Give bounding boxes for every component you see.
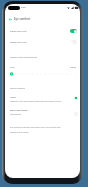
staticText: Single Line Title [10, 41, 27, 44]
button[interactable] [5, 37, 80, 47]
button[interactable] [5, 106, 80, 119]
staticText: Description [10, 113, 22, 116]
staticText: Eye comfort [14, 17, 31, 21]
staticText: Cool [10, 66, 15, 69]
staticText: Color [10, 96, 16, 99]
staticText: prevents eye strain. [10, 131, 30, 134]
staticText: Black and White [10, 109, 28, 112]
staticText: DISPLAY EFFECTS [10, 87, 25, 90]
button[interactable] [5, 93, 80, 106]
staticText: Warm [70, 66, 77, 69]
staticText: SCREEN COLOR TEMPERATURE [10, 56, 37, 59]
staticText: Eye comfort reduces blue light from the … [10, 126, 61, 129]
staticText: Protects your eyes while retaining the o… [10, 100, 62, 103]
button[interactable] [5, 26, 80, 36]
staticText: 9:30 [21, 6, 26, 9]
button[interactable]: Back [6, 15, 15, 24]
button[interactable]: Colour temperature [9, 71, 76, 77]
staticText: Single Line Title [10, 30, 27, 33]
